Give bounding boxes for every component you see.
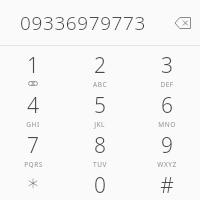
staticText: 09336979773 (20, 10, 146, 36)
staticText: 2 (94, 51, 106, 80)
staticText: MNO (158, 120, 176, 129)
button[interactable]: 0 (66, 170, 133, 200)
staticText: JKL (94, 120, 105, 129)
button[interactable]: ∗ (0, 170, 66, 200)
staticText: WXYZ (157, 160, 177, 169)
button[interactable]: 6 (133, 90, 200, 130)
button[interactable]: 5 (66, 90, 133, 130)
staticText: 4 (27, 91, 39, 120)
button[interactable]: Backspace (166, 0, 200, 45)
staticText: 7 (27, 131, 39, 160)
staticText: 5 (94, 91, 106, 120)
button[interactable]: 9 (133, 130, 200, 170)
staticText: PQRS (24, 160, 43, 169)
button[interactable]: 8 (66, 130, 133, 170)
staticText: ∗ (26, 171, 40, 195)
button[interactable]: # (133, 170, 200, 200)
staticText: 1 (27, 51, 39, 80)
staticText: # (160, 171, 174, 200)
staticText: 0 (94, 171, 106, 200)
button[interactable]: 2 (66, 50, 133, 90)
button[interactable]: 09336979773 (0, 0, 166, 45)
staticText: TUV (93, 160, 107, 169)
staticText: ABC (93, 80, 107, 89)
staticText: DEF (160, 80, 174, 89)
button[interactable]: 3 (133, 50, 200, 90)
staticText: 8 (94, 131, 106, 160)
staticText: 3 (161, 51, 173, 80)
button[interactable]: 7 (0, 130, 66, 170)
button[interactable]: 4 (0, 90, 66, 130)
staticText: 9 (161, 131, 173, 160)
button[interactable]: 1 (0, 50, 66, 90)
staticText: GHI (26, 120, 40, 129)
staticText: 6 (161, 91, 173, 120)
